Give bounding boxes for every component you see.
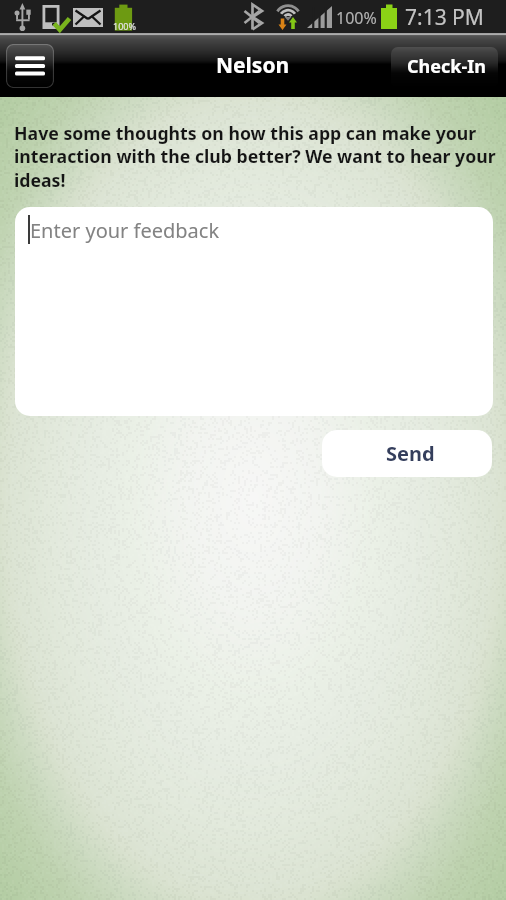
staticText: Nelson: [216, 51, 290, 80]
staticText: Have some thoughts on how this app can m…: [14, 121, 502, 193]
button[interactable]: Send: [322, 430, 492, 477]
staticText: 100%: [336, 7, 377, 29]
staticText: 100%: [113, 20, 136, 32]
staticText: 7:13 PM: [405, 3, 484, 32]
staticText: Check-In: [407, 54, 486, 79]
button[interactable]: Check-In: [391, 47, 498, 87]
staticText: Enter your feedback: [30, 217, 220, 244]
staticText: Send: [386, 440, 435, 467]
button[interactable]: Enter your feedback: [15, 207, 493, 416]
button[interactable]: Menu: [6, 44, 54, 88]
